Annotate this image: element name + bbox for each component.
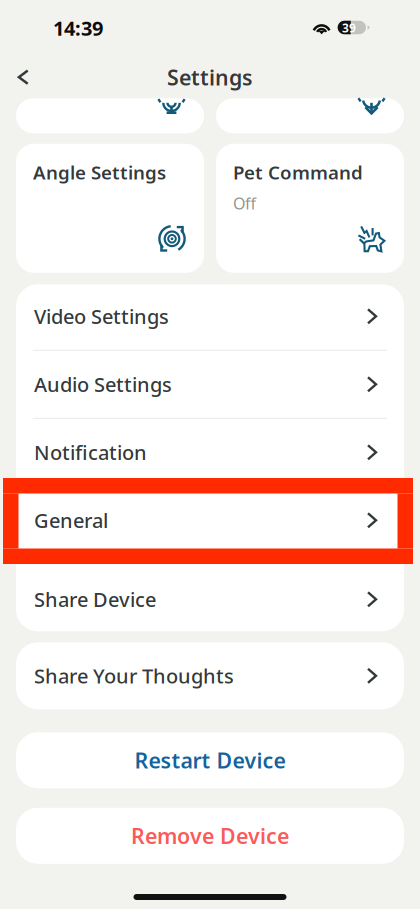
staticText: 39 (342, 20, 356, 36)
button[interactable]: Restart Device (16, 732, 404, 788)
button[interactable]: Remove Device (16, 808, 404, 864)
staticText: Restart Device (134, 746, 285, 774)
staticText: Remove Device (131, 822, 289, 850)
staticText: Pet Command (233, 160, 363, 185)
button[interactable]: Audio Settings (16, 351, 404, 418)
staticText: Video Settings (34, 303, 169, 330)
button[interactable]: Notification (16, 419, 404, 486)
button[interactable]: Back (0, 55, 46, 99)
staticText: Off (233, 193, 256, 214)
button[interactable]: General (16, 487, 404, 554)
staticText: 14:39 (53, 15, 103, 41)
staticText: Share Device (34, 586, 156, 613)
button[interactable]: Share Device (16, 555, 404, 633)
button[interactable]: Video Settings (16, 283, 404, 350)
staticText: General (34, 507, 108, 534)
staticText: Audio Settings (34, 371, 172, 398)
staticText: Share Your Thoughts (34, 662, 234, 689)
staticText: Settings (167, 63, 253, 91)
staticText: Angle Settings (33, 160, 166, 185)
button[interactable]: Microphone setting (16, 98, 204, 133)
staticText: Notification (34, 439, 147, 466)
button[interactable]: Sound setting (216, 98, 404, 133)
button[interactable]: Share Your Thoughts (16, 642, 404, 709)
button[interactable]: Pet Command (216, 144, 404, 273)
button[interactable]: Angle Settings (16, 144, 204, 273)
